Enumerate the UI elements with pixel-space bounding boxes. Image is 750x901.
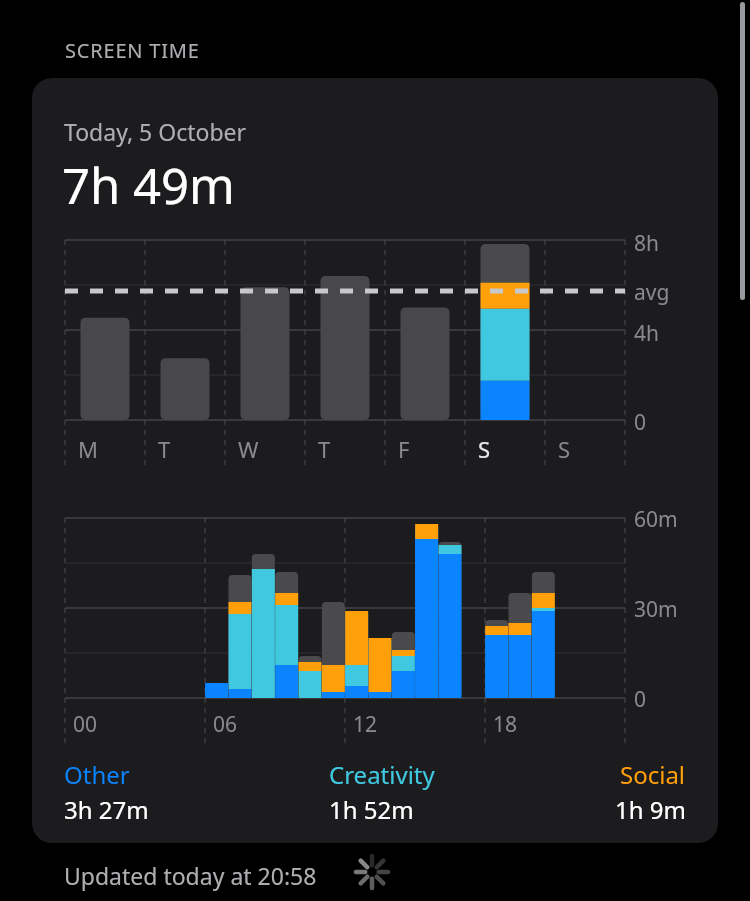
button[interactable]: Screen time summary: [0, 0, 750, 901]
